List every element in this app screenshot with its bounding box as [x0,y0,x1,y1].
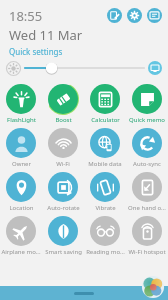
button[interactable]: Floating shortcut [141,275,165,299]
staticText: Reading mo... [86,248,125,256]
button[interactable]: Mobile data [84,126,126,168]
button[interactable]: Notifications [147,8,162,23]
button[interactable]: FlashLight [0,82,42,124]
button[interactable]: Wi-Fi [42,126,84,168]
button[interactable]: Auto-sync [126,126,168,168]
staticText: Location [9,204,34,212]
staticText: One hand o... [128,204,166,212]
staticText: 18:55 [9,7,43,25]
staticText: Auto-rotate [47,204,80,212]
button[interactable]: Collapse panel [74,292,94,295]
staticText: Calculator [91,116,120,124]
staticText: Smart saving [45,248,82,256]
staticText: Wi-Fi hotspot [128,248,166,256]
button[interactable]: Smart saving [42,214,84,256]
button[interactable]: Settings [127,8,142,23]
staticText: Quick settings [9,46,63,57]
button[interactable]: Calculator [84,82,126,124]
staticText: Wi-Fi [56,160,70,168]
staticText: Quick memo [129,116,165,124]
staticText: Airplane mo... [1,248,41,256]
button[interactable]: Auto brightness [148,61,162,75]
button[interactable]: Wi-Fi hotspot [126,214,168,256]
button[interactable]: Reading mo... [84,214,126,256]
staticText: Wed 11 Mar [9,26,83,44]
button[interactable]: Quick memo [126,82,168,124]
button[interactable]: Brightness [6,61,21,76]
button[interactable]: Vibrate [84,170,126,212]
button[interactable]: Location [0,170,42,212]
staticText: Owner [12,160,31,168]
staticText: Vibrate [95,204,116,212]
button[interactable]: One hand o... [126,170,168,212]
button[interactable]: Boost [42,82,84,124]
staticText: Mobile data [88,160,122,168]
staticText: Auto-sync [133,160,161,168]
staticText: FlashLight [7,116,36,124]
button[interactable]: Owner [0,126,42,168]
button[interactable]: Airplane mo... [0,214,42,256]
staticText: Boost [55,116,72,124]
button[interactable]: Auto-rotate [42,170,84,212]
button[interactable]: Edit [107,8,122,23]
